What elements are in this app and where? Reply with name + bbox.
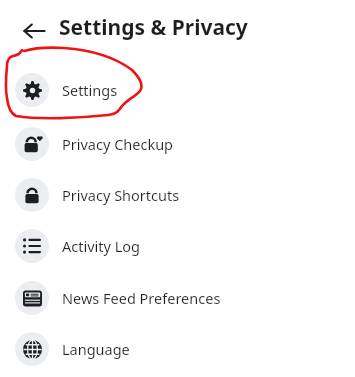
button[interactable]: Settings (0, 66, 355, 114)
staticText: Settings (62, 80, 118, 100)
button[interactable]: Back (16, 18, 52, 44)
staticText: Privacy Checkup (62, 134, 174, 154)
staticText: Language (62, 339, 130, 359)
button[interactable]: Privacy Checkup (0, 120, 355, 168)
staticText: Settings & Privacy (59, 13, 248, 42)
staticText: News Feed Preferences (62, 288, 221, 308)
button[interactable]: Privacy Shortcuts (0, 171, 355, 219)
staticText: Activity Log (62, 236, 140, 256)
button[interactable]: News Feed Preferences (0, 274, 355, 322)
button[interactable]: Activity Log (0, 222, 355, 270)
staticText: Privacy Shortcuts (62, 185, 180, 205)
button[interactable]: Language (0, 325, 355, 373)
